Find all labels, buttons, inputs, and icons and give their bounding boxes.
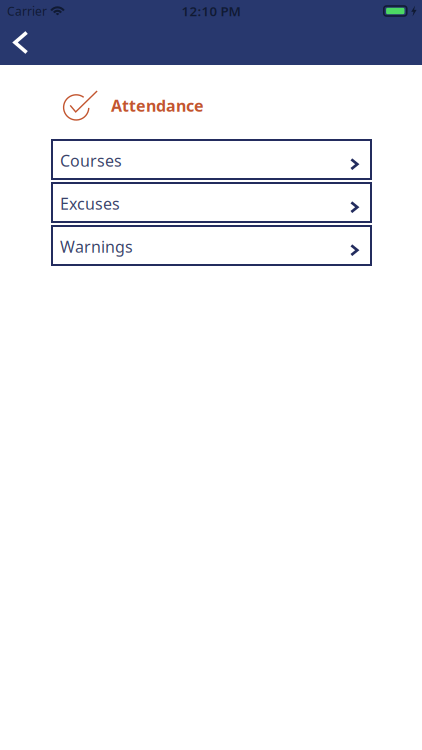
button[interactable]: Courses [52,140,371,179]
staticText: Courses [60,150,122,171]
button[interactable]: Back [0,22,43,64]
button[interactable]: Excuses [52,183,371,222]
staticText: Excuses [60,193,120,214]
staticText: Carrier [7,3,47,19]
staticText: Warnings [60,236,133,257]
button[interactable]: Warnings [52,226,371,265]
staticText: 12:10 PM [181,2,240,20]
staticText: Attendance [111,95,204,116]
